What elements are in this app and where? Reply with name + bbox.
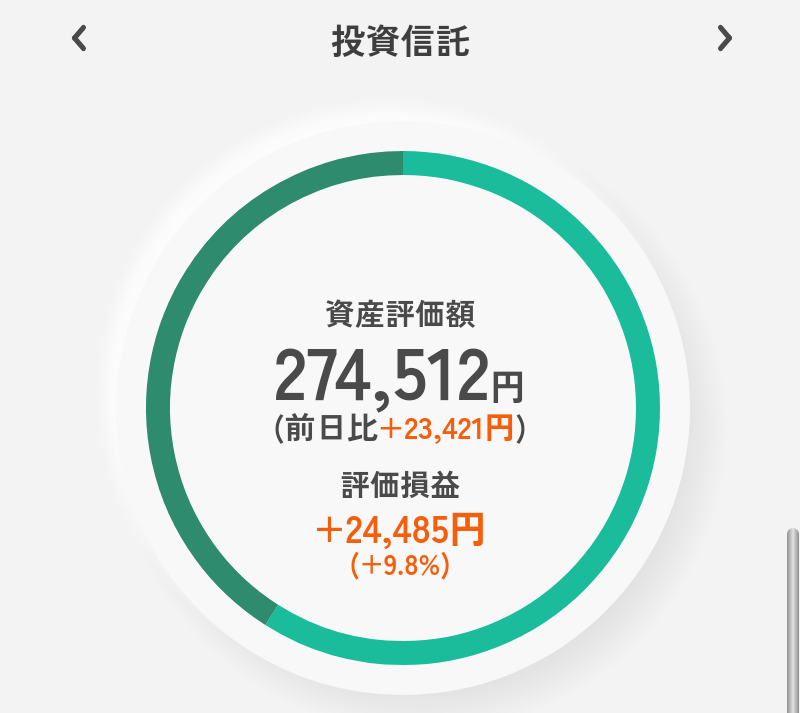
staticText: 資産評価額 [325, 290, 475, 333]
staticText: 274,512円 [274, 315, 526, 421]
button[interactable] [700, 8, 748, 68]
staticText: +24,485円 [313, 499, 487, 554]
staticText: 投資信託 [330, 13, 471, 64]
staticText: 評価損益 [340, 461, 460, 504]
staticText: (+9.8%) [349, 543, 451, 584]
staticText: (前日比+23,421円) [273, 403, 527, 448]
button[interactable] [52, 8, 100, 68]
